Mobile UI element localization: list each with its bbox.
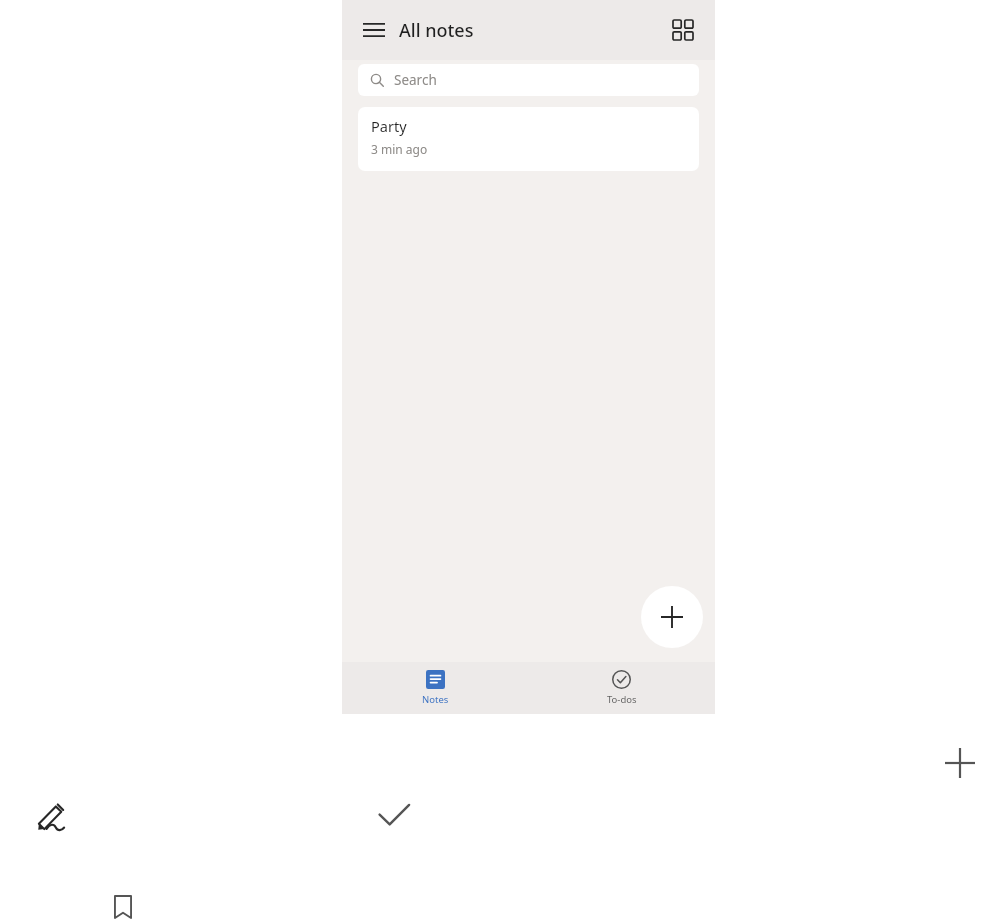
button[interactable]: Change view: [661, 8, 705, 52]
staticText: Notes: [422, 693, 449, 706]
button[interactable]: Search: [358, 64, 699, 96]
button[interactable]: Bookmark: [104, 888, 142, 923]
staticText: All notes: [399, 18, 474, 43]
button[interactable]: To-dos: [528, 662, 715, 714]
button[interactable]: Edit: [30, 794, 74, 838]
staticText: 3 min ago: [371, 141, 428, 157]
staticText: To-dos: [607, 693, 637, 706]
staticText: Party: [371, 116, 407, 136]
button[interactable]: Party: [358, 107, 699, 171]
button[interactable]: Done: [371, 792, 417, 838]
button[interactable]: Notes: [342, 662, 528, 714]
staticText: Search: [394, 71, 437, 89]
button[interactable]: Add: [938, 741, 982, 785]
button[interactable]: Menu: [352, 8, 396, 52]
button[interactable]: New note: [641, 586, 703, 648]
